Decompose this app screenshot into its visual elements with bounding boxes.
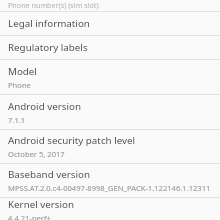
- staticText: Android security patch level: [8, 134, 136, 147]
- button[interactable]: Regulatory labels: [0, 36, 220, 59]
- button[interactable]: Model: [0, 60, 220, 94]
- staticText: Legal information: [8, 17, 90, 30]
- staticText: Baseband version: [8, 168, 90, 181]
- button[interactable]: Android version: [0, 95, 220, 129]
- staticText: 4.4.21-perf+: [8, 213, 51, 220]
- staticText: Model: [8, 65, 37, 78]
- button[interactable]: Android security patch level: [0, 130, 220, 163]
- button[interactable]: Phone number(s) (sim slot): [0, 0, 220, 11]
- staticText: 7.1.1: [8, 115, 26, 125]
- staticText: Regulatory labels: [8, 41, 88, 54]
- staticText: Android version: [8, 100, 81, 113]
- staticText: October 5, 2017: [8, 149, 65, 159]
- staticText: Kernel version: [8, 198, 75, 211]
- staticText: Phone number(s) (sim slot): [8, 0, 99, 10]
- button[interactable]: Kernel version: [0, 198, 220, 220]
- staticText: Phone: [8, 80, 31, 90]
- button[interactable]: Legal information: [0, 12, 220, 35]
- button[interactable]: Baseband version: [0, 164, 220, 197]
- staticText: MPSS.AT.2.0.c4-00497-8998_GEN_PACK-1.122…: [8, 183, 214, 193]
